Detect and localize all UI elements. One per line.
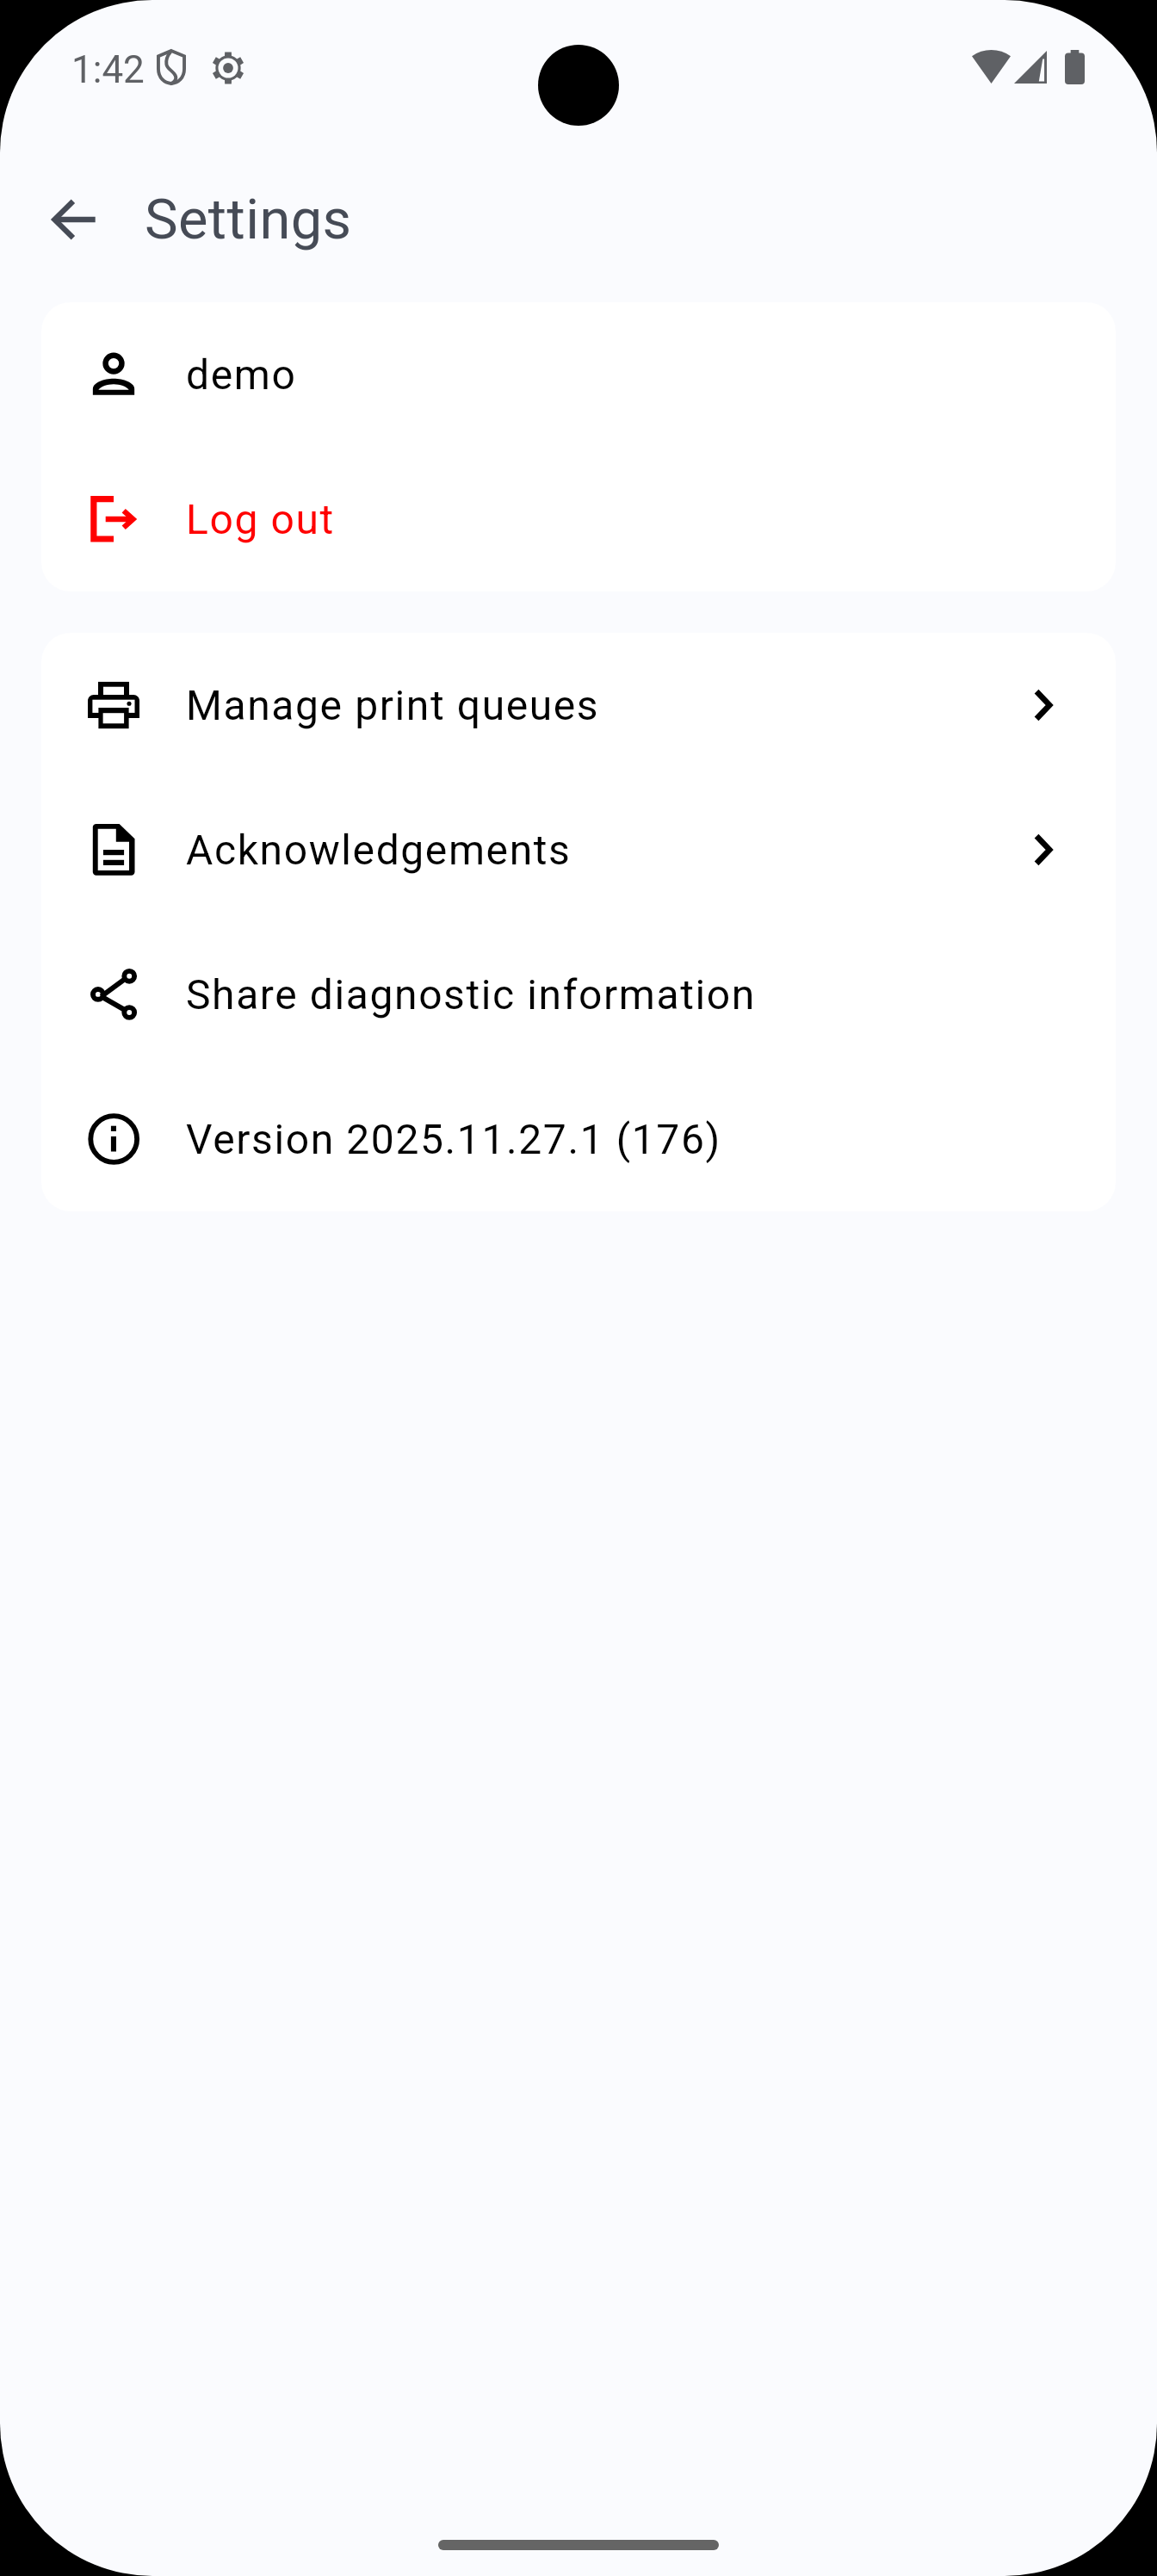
button[interactable]: demo (41, 302, 1116, 447)
staticText: Share diagnostic information (186, 970, 756, 1019)
staticText: Version 2025.11.27.1 (176) (186, 1115, 721, 1163)
staticText: demo (186, 350, 297, 399)
button[interactable]: Share diagnostic information (41, 922, 1116, 1067)
button[interactable]: Version 2025.11.27.1 (176) (41, 1067, 1116, 1211)
staticText: Settings (145, 187, 352, 252)
staticText: Log out (186, 495, 335, 543)
button[interactable]: Log out (41, 447, 1116, 591)
staticText: Acknowledgements (186, 826, 572, 874)
button[interactable]: Acknowledgements (41, 777, 1116, 922)
button[interactable]: Back (13, 158, 137, 282)
staticText: Manage print queues (186, 681, 600, 729)
button[interactable]: Manage print queues (41, 633, 1116, 777)
staticText: 1:42 (71, 47, 145, 92)
